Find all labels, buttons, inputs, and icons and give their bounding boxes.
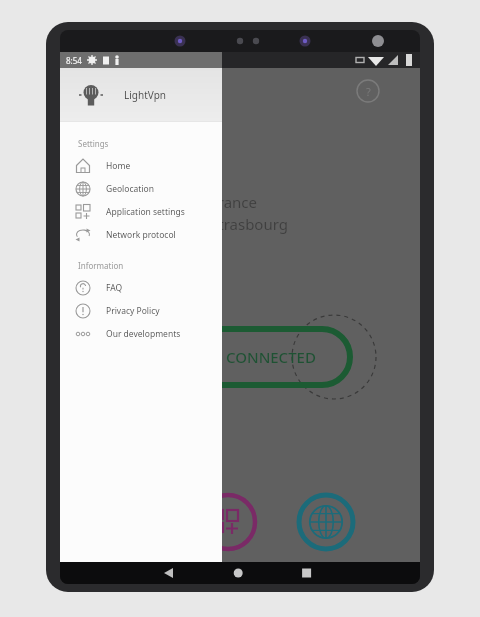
staticText: Our developments [106, 328, 181, 340]
staticText: Network protocol [106, 229, 176, 241]
button[interactable]: Network protocol [60, 223, 222, 246]
button[interactable]: Application settings [60, 200, 222, 223]
staticText: Strasbourg [210, 214, 288, 234]
button[interactable]: LightVpn [60, 68, 222, 121]
staticText: LightVpn [124, 88, 166, 102]
staticText: Application settings [106, 206, 185, 218]
button[interactable]: Select location [296, 492, 356, 552]
staticText: ? [366, 84, 371, 99]
button[interactable]: Recent apps [300, 562, 420, 584]
staticText: France [210, 192, 258, 212]
button[interactable]: Help [355, 78, 381, 104]
button[interactable]: Back [60, 562, 180, 584]
button[interactable]: Our developments [60, 322, 222, 345]
staticText: Home [106, 160, 131, 172]
staticText: Geolocation [106, 183, 154, 195]
staticText: Information [78, 260, 124, 271]
staticText: Settings [78, 138, 109, 149]
staticText: Privacy Policy [106, 305, 160, 317]
button[interactable]: FAQ [60, 276, 222, 299]
button[interactable]: Geolocation [60, 177, 222, 200]
staticText: CONNECTED [226, 347, 316, 367]
staticText: 8:54 [66, 55, 82, 66]
button[interactable]: Home [180, 562, 300, 584]
button[interactable]: Apps [198, 492, 258, 552]
button[interactable]: CONNECTED [180, 317, 390, 397]
button[interactable]: Privacy Policy [60, 299, 222, 322]
staticText: FAQ [106, 282, 123, 294]
button[interactable]: Home [60, 154, 222, 177]
